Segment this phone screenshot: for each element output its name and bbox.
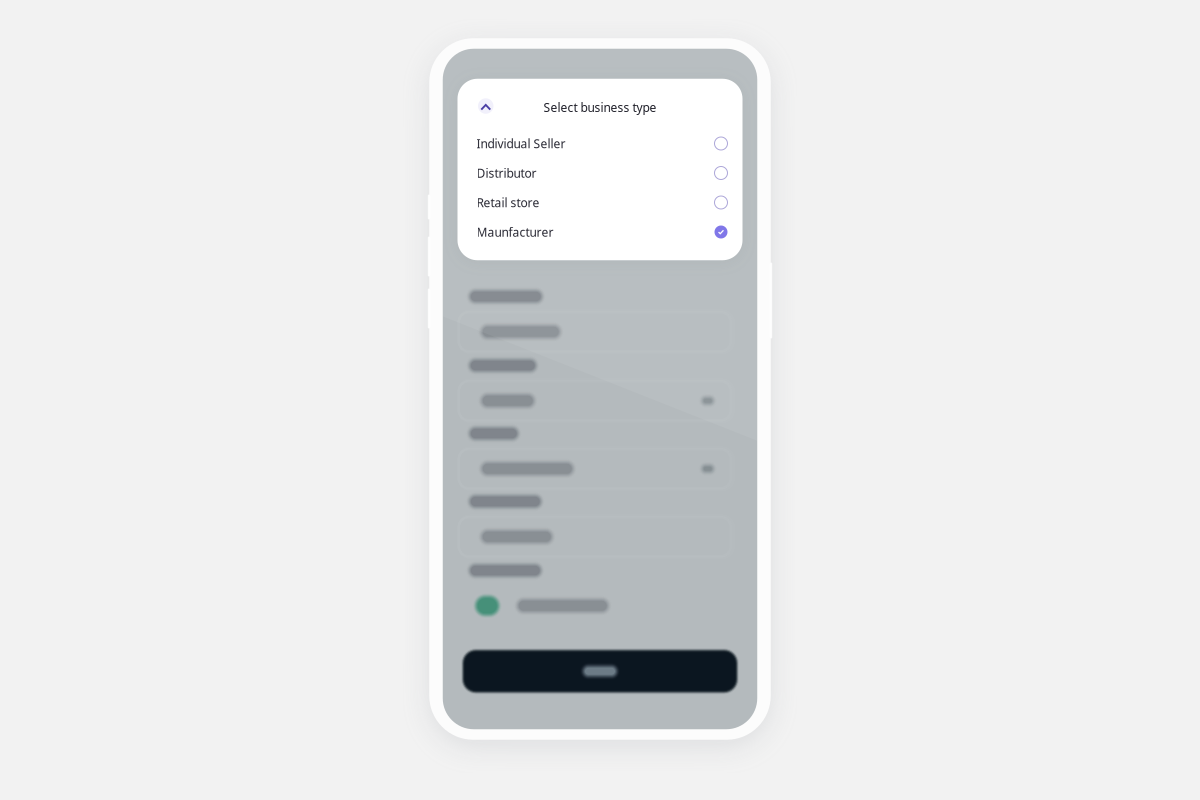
staticText: Individual Seller — [476, 135, 565, 151]
staticText: Retail store — [476, 194, 539, 210]
button[interactable]: Maunfacturer — [457, 217, 742, 247]
staticText: Select business type — [543, 99, 656, 115]
button[interactable]: Distributor — [457, 158, 742, 188]
button[interactable]: Individual Seller — [457, 129, 742, 158]
button[interactable]: Retail store — [457, 188, 742, 217]
staticText: Distributor — [476, 165, 536, 181]
button[interactable]: Collapse — [478, 98, 493, 114]
button[interactable]: Next — [461, 648, 739, 694]
staticText: Maunfacturer — [476, 224, 553, 240]
